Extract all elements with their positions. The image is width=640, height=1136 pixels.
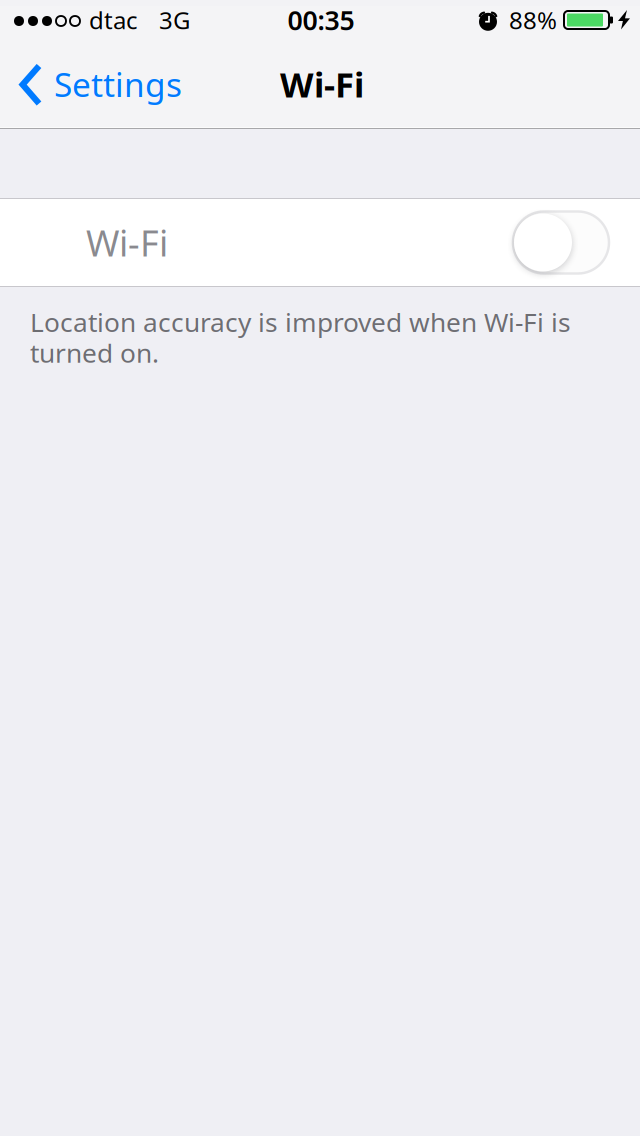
staticText: Settings <box>54 62 182 106</box>
staticText: Location accuracy is improved when Wi-Fi… <box>30 304 571 371</box>
button[interactable]: Settings <box>0 54 196 114</box>
staticText: Wi-Fi <box>280 61 364 107</box>
staticText: Wi-Fi <box>86 219 168 266</box>
staticText: 3G <box>159 4 190 36</box>
staticText: 00:35 <box>287 2 354 38</box>
staticText: dtac <box>89 4 138 36</box>
staticText: 88% <box>509 4 557 36</box>
button[interactable]: Wi-Fi, off <box>513 211 609 273</box>
